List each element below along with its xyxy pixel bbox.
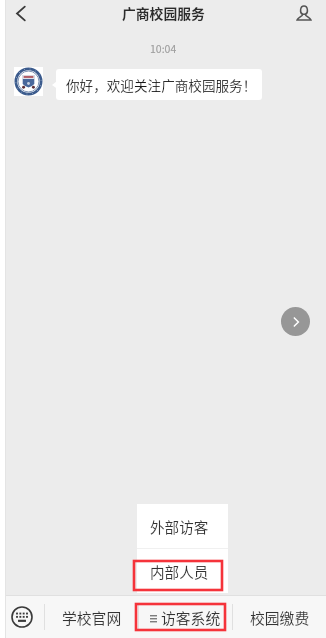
staticText: 10:04 <box>150 41 177 56</box>
button[interactable]: 学校官网 <box>45 596 138 638</box>
staticText: 内部人员 <box>150 561 209 582</box>
button[interactable]: Expand <box>281 307 310 336</box>
button[interactable]: Back <box>6 0 36 26</box>
staticText: 外部访客 <box>150 516 209 537</box>
staticText: 广商校园服务 <box>122 3 205 23</box>
button[interactable]: Profile <box>290 0 318 26</box>
staticText: 校园缴费 <box>250 607 310 628</box>
staticText: 你好，欢迎关注广商校园服务！ <box>66 75 257 95</box>
button[interactable]: 外部访客 <box>137 504 228 548</box>
button[interactable]: 访客系统 <box>139 596 232 638</box>
button[interactable]: Keyboard <box>0 596 44 638</box>
staticText: 访客系统 <box>161 607 221 628</box>
button[interactable]: 内部人员 <box>137 549 228 593</box>
staticText: 学校官网 <box>62 607 122 628</box>
button[interactable]: 校园缴费 <box>233 596 326 638</box>
